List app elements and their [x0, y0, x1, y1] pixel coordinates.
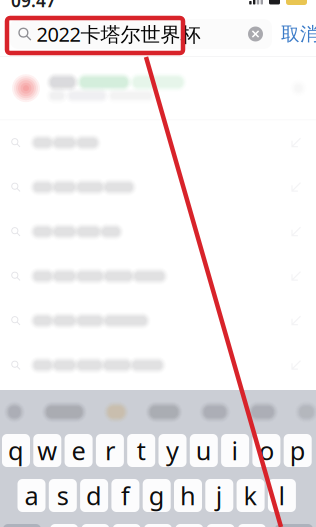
button[interactable]: Candidate 4	[149, 405, 178, 418]
button[interactable]: l	[268, 479, 296, 512]
button[interactable]: j	[205, 479, 233, 512]
staticText: s	[57, 479, 69, 512]
button[interactable]: Candidate 2	[46, 405, 83, 418]
staticText: i	[232, 434, 239, 467]
staticText: 2022卡塔尔世界杯	[36, 21, 200, 47]
button[interactable]: s	[49, 479, 77, 512]
button[interactable]: c	[113, 524, 141, 527]
staticText: g	[149, 479, 165, 512]
button[interactable]: o	[252, 434, 280, 467]
staticText: q	[8, 434, 24, 467]
staticText: t	[137, 434, 146, 467]
staticText: p	[290, 434, 306, 467]
button[interactable]: 取消	[281, 19, 316, 49]
staticText: j	[216, 479, 223, 512]
button[interactable]	[0, 254, 316, 298]
button[interactable]: i	[221, 434, 249, 467]
button[interactable]: g	[143, 479, 171, 512]
button[interactable]	[0, 57, 316, 120]
staticText: k	[244, 479, 258, 512]
button[interactable]: Candidate 5	[203, 405, 226, 418]
button[interactable]: w	[33, 434, 61, 467]
staticText: u	[196, 434, 212, 467]
button[interactable]: z	[50, 524, 78, 527]
button[interactable]: Candidate 6	[251, 405, 274, 418]
button[interactable]: k	[237, 479, 265, 512]
staticText: y	[166, 434, 179, 467]
button[interactable]: 2022卡塔尔世界杯	[10, 19, 272, 49]
staticText: 09:47	[11, 0, 56, 12]
staticText: f	[121, 479, 130, 512]
button[interactable]: Delete	[275, 524, 313, 527]
button[interactable]	[0, 343, 316, 387]
staticText: 取消	[281, 22, 316, 45]
button[interactable]: Candidate 3	[108, 405, 125, 418]
button[interactable]: Candidate 1	[8, 405, 21, 418]
button[interactable]: y	[158, 434, 186, 467]
button[interactable]: m	[238, 524, 266, 527]
button[interactable]: Candidate 7	[299, 405, 314, 418]
button[interactable]: x	[81, 524, 109, 527]
button[interactable]	[0, 165, 316, 209]
button[interactable]: u	[190, 434, 218, 467]
button[interactable]: t	[127, 434, 155, 467]
button[interactable]: d	[80, 479, 108, 512]
button[interactable]	[0, 298, 316, 343]
button[interactable]: v	[144, 524, 172, 527]
button[interactable]: e	[65, 434, 93, 467]
button[interactable]: p	[284, 434, 312, 467]
button[interactable]	[0, 209, 316, 254]
button[interactable]: f	[111, 479, 139, 512]
staticText: o	[259, 434, 274, 467]
staticText: d	[86, 479, 102, 512]
staticText: r	[105, 434, 115, 467]
button[interactable]: n	[207, 524, 235, 527]
staticText: e	[72, 434, 86, 467]
button[interactable]	[0, 120, 316, 165]
button[interactable]: r	[96, 434, 124, 467]
button[interactable]: b	[175, 524, 203, 527]
button[interactable]: a	[17, 479, 45, 512]
staticText: l	[278, 479, 285, 512]
staticText: a	[24, 479, 38, 512]
button[interactable]: Shift	[3, 524, 41, 527]
staticText: w	[37, 434, 57, 467]
button[interactable]: q	[2, 434, 30, 467]
staticText: m	[240, 524, 264, 527]
button[interactable]: h	[174, 479, 202, 512]
staticText: h	[180, 479, 196, 512]
